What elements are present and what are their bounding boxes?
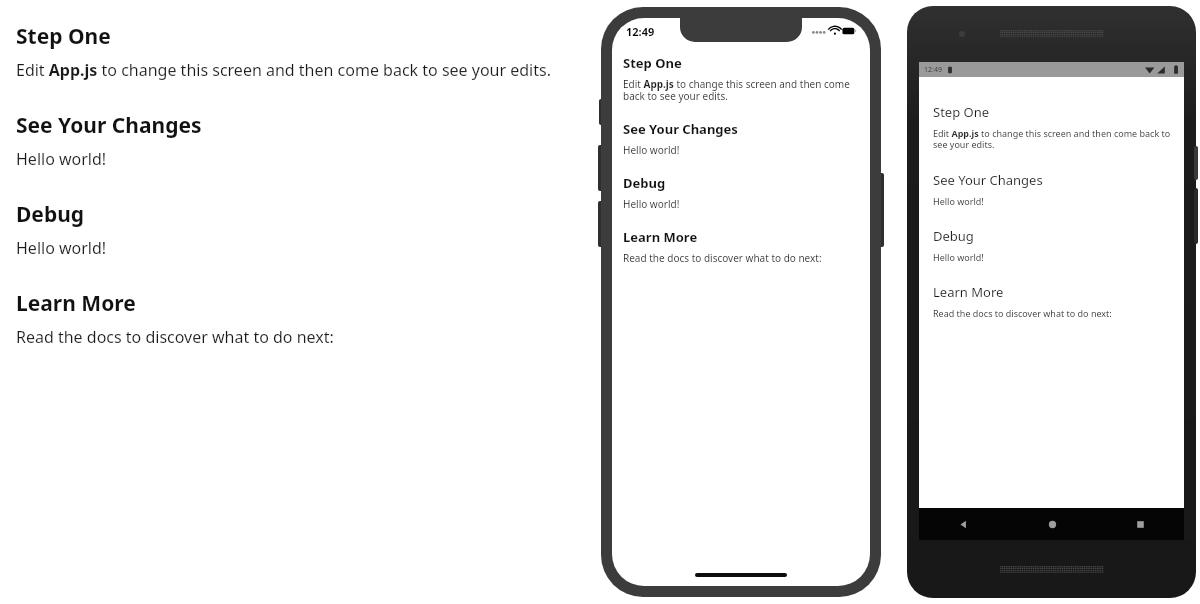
staticText: Learn More — [623, 228, 698, 246]
staticText: Debug — [933, 227, 974, 245]
staticText: Learn More — [16, 289, 136, 318]
button[interactable]: Learn More — [623, 228, 858, 265]
staticText: Hello world! — [933, 195, 984, 207]
staticText: Edit App.js to change this screen and th… — [623, 77, 858, 103]
staticText: Read the docs to discover what to do nex… — [933, 307, 1112, 319]
button[interactable]: Learn More — [16, 289, 576, 348]
staticText: Edit App.js to change this screen and th… — [16, 59, 551, 81]
staticText: Hello world! — [933, 251, 984, 263]
staticText: See Your Changes — [623, 120, 738, 138]
staticText: Step One — [933, 103, 990, 121]
button[interactable]: Home — [1008, 508, 1096, 540]
other: Mute switch — [599, 99, 604, 125]
other: Power — [1194, 146, 1198, 180]
other: Power — [878, 173, 884, 247]
staticText: 12:49 — [626, 24, 655, 39]
staticText: Learn More — [933, 283, 1004, 301]
staticText: Read the docs to discover what to do nex… — [16, 326, 334, 348]
staticText: Debug — [16, 200, 85, 229]
staticText: 12:49 — [924, 65, 942, 75]
button[interactable]: Step One — [623, 54, 858, 103]
staticText: Edit App.js to change this screen and th… — [933, 127, 1172, 151]
button[interactable]: Debug — [933, 227, 1172, 263]
other: Volume — [1194, 188, 1198, 244]
staticText: See Your Changes — [16, 111, 202, 140]
button[interactable]: Learn More — [933, 283, 1172, 319]
button[interactable]: Recent apps — [1096, 508, 1184, 540]
staticText: Step One — [16, 22, 111, 51]
button[interactable]: Step One — [933, 103, 1172, 151]
staticText: Hello world! — [623, 197, 680, 211]
button[interactable]: Debug — [16, 200, 576, 259]
staticText: Hello world! — [623, 143, 680, 157]
button[interactable]: See Your Changes — [933, 171, 1172, 207]
button[interactable]: Debug — [623, 174, 858, 211]
staticText: Hello world! — [16, 237, 107, 259]
staticText: Debug — [623, 174, 666, 192]
other: Volume up — [598, 145, 604, 191]
staticText: Hello world! — [16, 148, 107, 170]
staticText: See Your Changes — [933, 171, 1043, 189]
button[interactable]: Step One — [16, 22, 576, 81]
button[interactable]: See Your Changes — [16, 111, 576, 170]
button[interactable]: Back — [919, 508, 1008, 540]
staticText: Step One — [623, 54, 682, 72]
staticText: Read the docs to discover what to do nex… — [623, 251, 822, 265]
other: Volume down — [598, 201, 604, 247]
button[interactable]: See Your Changes — [623, 120, 858, 157]
